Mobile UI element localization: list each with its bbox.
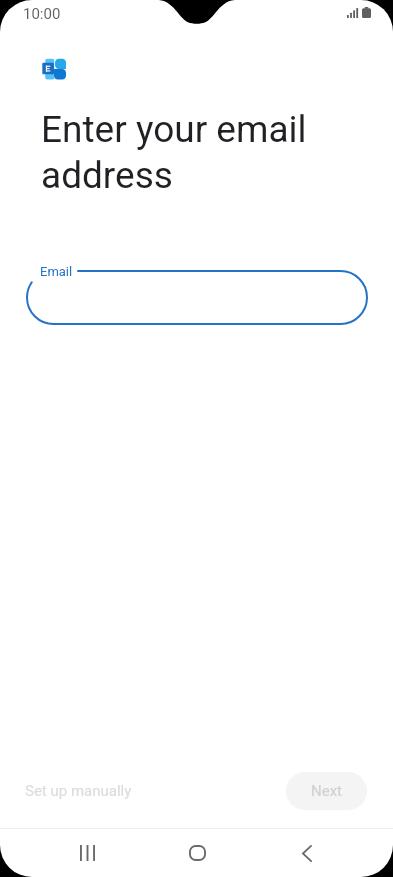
button[interactable]: Next [286,772,367,810]
staticText: Enter your email address [41,108,381,197]
button[interactable]: Email address input field [26,270,368,325]
button[interactable]: Set up manually [16,772,141,810]
button[interactable]: Recent apps [52,831,122,875]
staticText: 10:00 [23,5,61,23]
staticText: Email [40,264,73,279]
button[interactable]: Back [272,831,342,875]
staticText: Next [311,782,343,800]
staticText: Set up manually [25,782,132,800]
button[interactable]: Home [162,831,232,875]
